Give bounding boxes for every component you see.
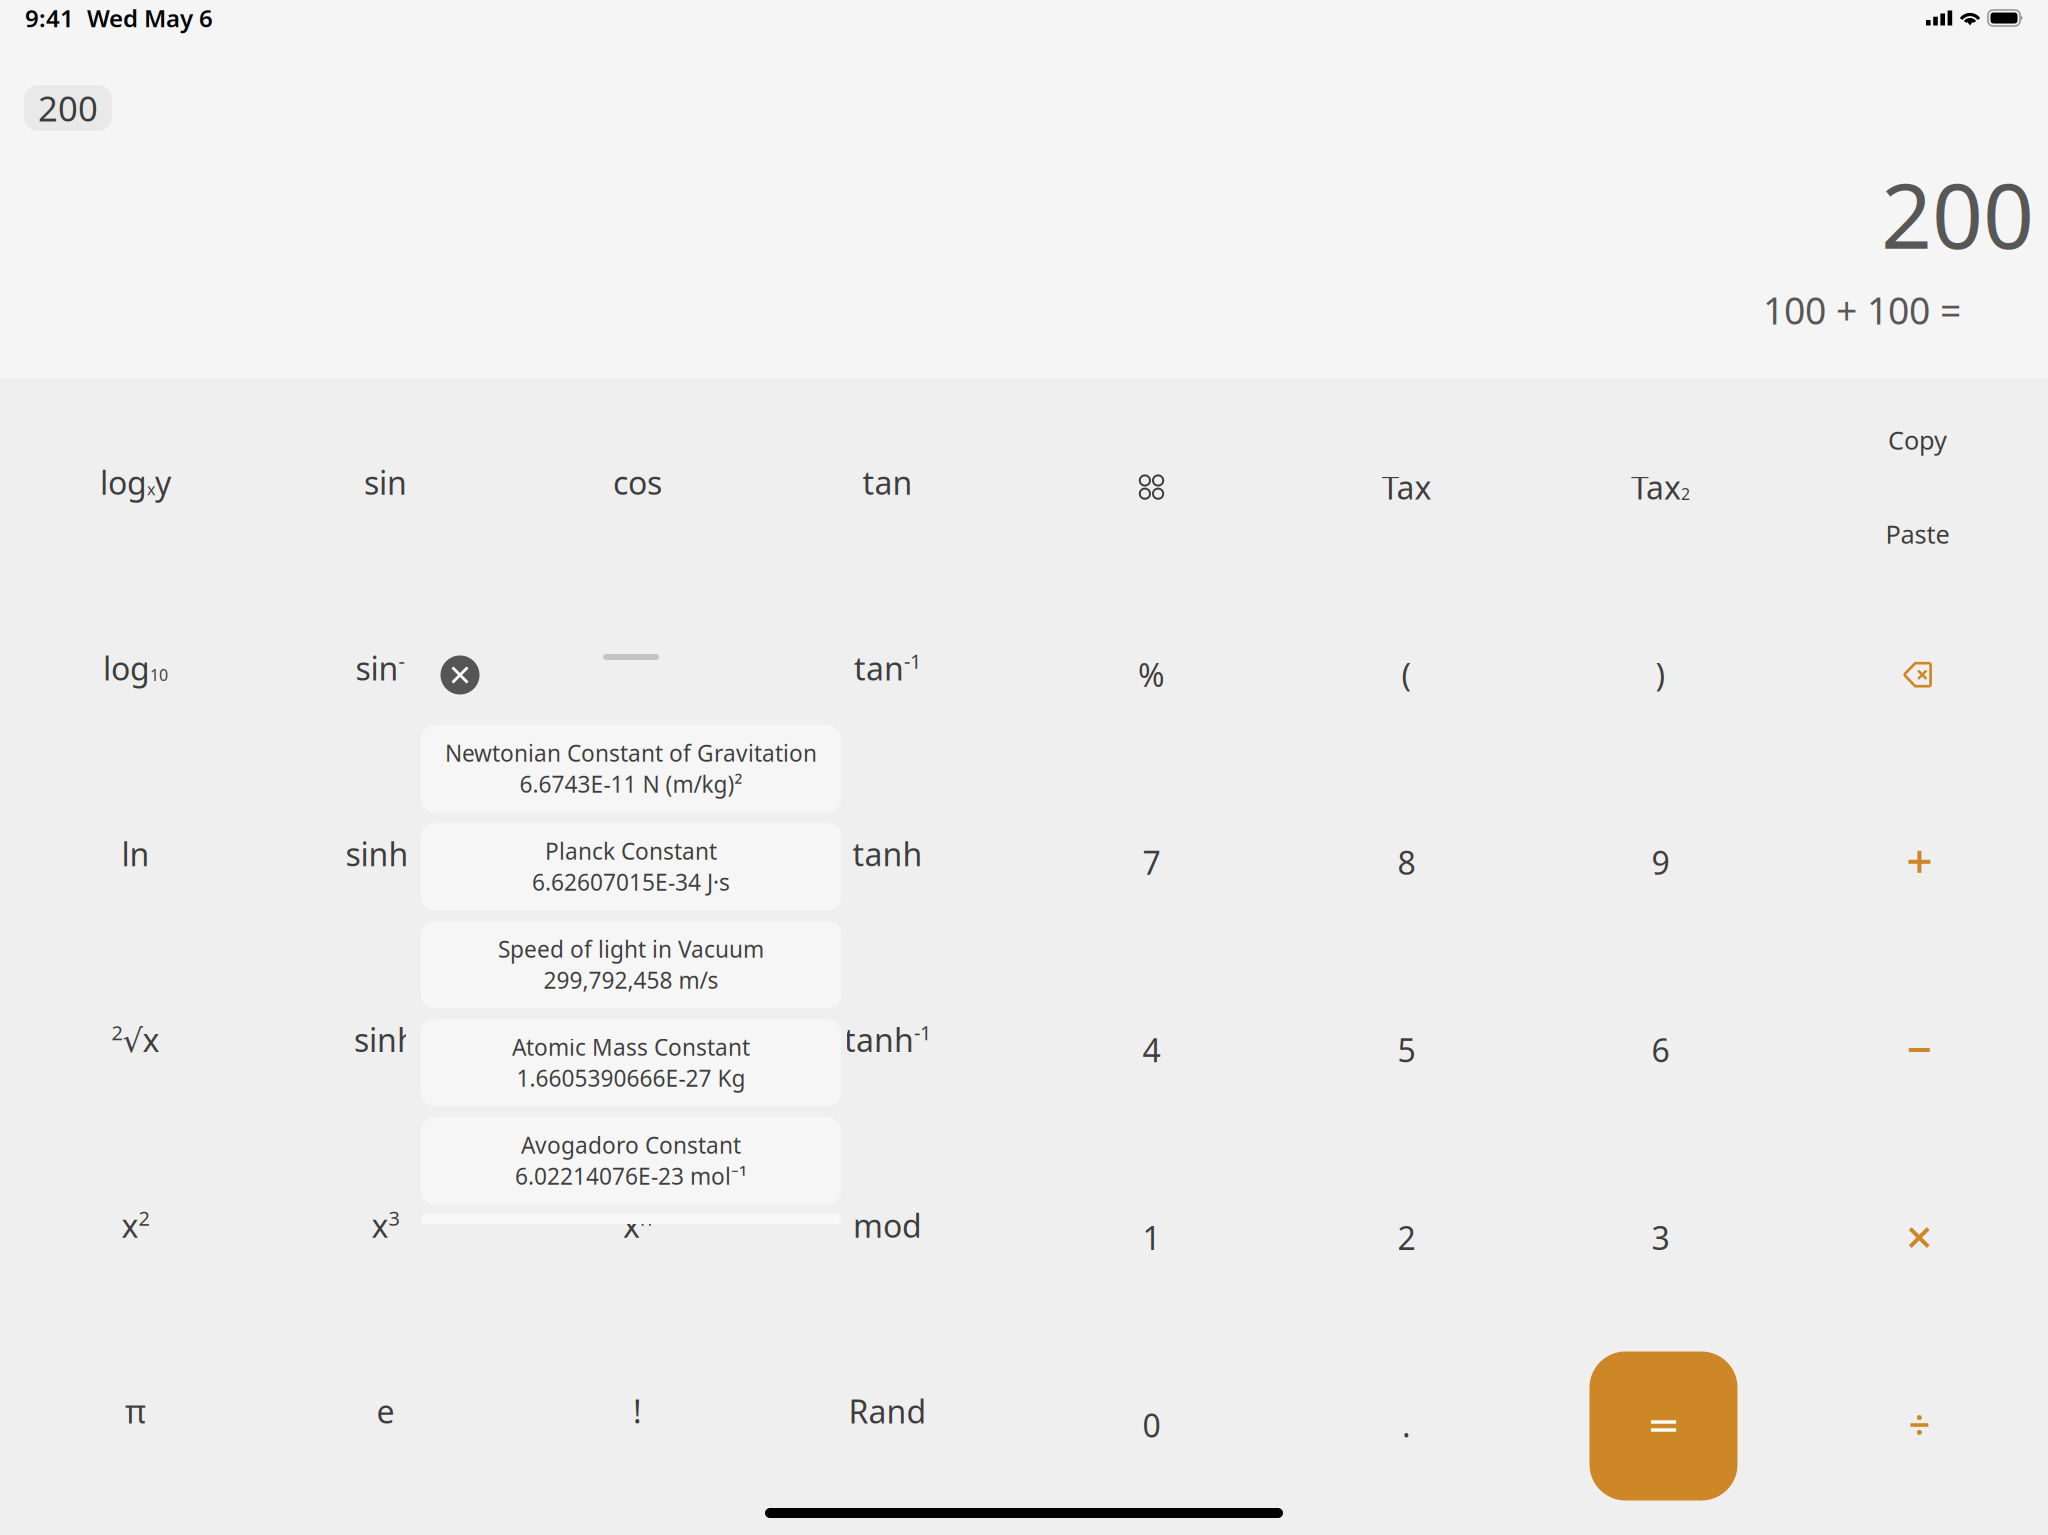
staticText: Speed of light in Vacuum: [498, 934, 764, 964]
button[interactable]: 5: [1301, 985, 1511, 1115]
staticText: 0: [1142, 1404, 1160, 1446]
button[interactable]: cos: [532, 417, 742, 547]
staticText: Copy: [1888, 423, 1947, 457]
button[interactable]: sin: [280, 417, 490, 547]
staticText: y: [155, 461, 171, 504]
button[interactable]: Rand: [782, 1346, 992, 1476]
staticText: cosh: [603, 1018, 672, 1061]
button[interactable]: Scientific constants: [1071, 427, 1231, 547]
staticText: ln: [121, 833, 149, 875]
staticText: 6.02214076E-23 mol⁻¹: [515, 1161, 747, 1191]
staticText: sin: [355, 647, 398, 689]
staticText: 2: [111, 1019, 122, 1046]
staticText: 3: [1651, 1216, 1669, 1259]
staticText: -1: [653, 648, 670, 674]
button[interactable]: (: [1301, 610, 1511, 740]
staticText: (: [1401, 653, 1411, 696]
button[interactable]: x: [532, 1160, 742, 1290]
button[interactable]: cos: [532, 603, 742, 733]
staticText: e: [376, 1390, 394, 1432]
staticText: sinh: [345, 833, 408, 875]
button[interactable]: Paste: [1812, 469, 2022, 599]
button[interactable]: .: [1301, 1360, 1511, 1490]
button[interactable]: Atomic Mass Constant: [421, 1019, 841, 1106]
button[interactable]: sinh: [280, 789, 490, 919]
staticText: mod: [853, 1204, 922, 1247]
button[interactable]: 7: [1046, 797, 1256, 927]
button[interactable]: 3: [1555, 1173, 1765, 1303]
button[interactable]: 1: [1046, 1173, 1256, 1303]
staticText: 1.6605390666E-27 Kg: [516, 1063, 745, 1093]
staticText: .: [1402, 1404, 1411, 1446]
staticText: 2: [1681, 483, 1690, 504]
button[interactable]: Planck Constant: [421, 823, 841, 910]
button[interactable]: tan: [782, 417, 992, 547]
staticText: sinh: [354, 1018, 417, 1061]
staticText: Newtonian Constant of Gravitation: [445, 738, 817, 768]
staticText: Avogadoro Constant: [521, 1130, 741, 1160]
staticText: 2: [138, 1205, 149, 1231]
button[interactable]: Equals: [1589, 1351, 1737, 1500]
button[interactable]: 2: [1301, 1173, 1511, 1303]
button[interactable]: 4: [1046, 985, 1256, 1115]
button[interactable]: %: [1046, 610, 1256, 740]
button[interactable]: 8: [1301, 797, 1511, 927]
staticText: 7: [1142, 841, 1160, 884]
staticText: log: [100, 461, 147, 504]
staticText: 8: [1397, 841, 1415, 884]
staticText: 9: [1651, 841, 1669, 884]
button[interactable]: Avogadoro Constant: [421, 1117, 841, 1204]
staticText: -1: [398, 648, 415, 674]
button[interactable]: Delete: [1837, 615, 1997, 735]
button[interactable]: sin: [280, 603, 490, 733]
button[interactable]: log: [30, 603, 240, 733]
staticText: tanh: [852, 833, 922, 875]
button[interactable]: 2: [30, 975, 240, 1105]
staticText: 6: [1651, 1029, 1669, 1071]
button[interactable]: mod: [782, 1160, 992, 1290]
button[interactable]: Plus: [1844, 807, 1994, 917]
button[interactable]: x: [30, 1160, 240, 1290]
staticText: 3: [388, 1205, 399, 1231]
button[interactable]: x: [280, 1160, 490, 1290]
button[interactable]: !: [532, 1346, 742, 1476]
button[interactable]: π: [30, 1346, 240, 1476]
button[interactable]: tanh: [782, 975, 992, 1105]
staticText: tanh: [844, 1018, 914, 1061]
button[interactable]: Tax: [1555, 422, 1765, 552]
button[interactable]: 0: [1046, 1360, 1256, 1490]
button[interactable]: 6: [1555, 985, 1765, 1115]
staticText: %: [1138, 653, 1165, 696]
button[interactable]: Divide: [1844, 1370, 1994, 1480]
staticText: x: [147, 478, 155, 500]
button[interactable]: tanh: [782, 789, 992, 919]
staticText: n: [640, 1205, 652, 1231]
staticText: x: [371, 1204, 388, 1247]
staticText: -1: [914, 1019, 931, 1046]
button[interactable]: tan: [782, 603, 992, 733]
button[interactable]: 200: [24, 85, 112, 131]
staticText: Planck Constant: [545, 836, 717, 866]
button[interactable]: sinh: [280, 975, 490, 1105]
button[interactable]: Speed of light in Vacuum: [421, 921, 841, 1008]
button[interactable]: Tax: [1301, 422, 1511, 552]
staticText: cosh: [594, 833, 663, 875]
button[interactable]: cosh: [532, 975, 742, 1105]
staticText: x: [121, 1204, 138, 1247]
staticText: 6.62607015E-34 J·s: [532, 867, 730, 897]
button[interactable]: ln: [30, 789, 240, 919]
button[interactable]: ): [1555, 610, 1765, 740]
button[interactable]: e: [280, 1346, 490, 1476]
button[interactable]: 9: [1555, 797, 1765, 927]
button[interactable]: Multiply: [1844, 1183, 1994, 1293]
staticText: log: [103, 647, 150, 689]
button[interactable]: Minus: [1845, 995, 1995, 1105]
staticText: Paste: [1885, 517, 1949, 551]
button[interactable]: Close: [440, 655, 479, 694]
button[interactable]: Newtonian Constant of Gravitation: [421, 725, 841, 812]
button[interactable]: Copy: [1812, 375, 2022, 505]
button[interactable]: log: [30, 417, 240, 547]
button[interactable]: cosh: [532, 789, 742, 919]
staticText: x: [623, 1204, 640, 1247]
staticText: π: [125, 1390, 146, 1432]
